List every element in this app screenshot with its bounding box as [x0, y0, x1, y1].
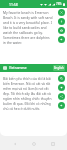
button[interactable]: Copy [58, 75, 65, 82]
staticText: English [54, 66, 64, 70]
button[interactable]: Listen [58, 36, 65, 43]
button[interactable]: Recent apps [48, 139, 57, 148]
button[interactable]: Back [10, 139, 19, 148]
staticText: Vietnamese [9, 66, 27, 70]
staticText: Bãi biển yêu thích của tôi là bãi biển E… [3, 76, 53, 111]
staticText: 78% [56, 2, 62, 6]
button[interactable]: English [53, 65, 65, 71]
staticText: 11:58 [9, 2, 18, 7]
button[interactable]: Vietnamese [0, 64, 67, 72]
button[interactable]: Close [58, 9, 65, 16]
button[interactable]: Camera [58, 27, 65, 34]
staticText: My favorite beach is Emerson Beach. It i… [3, 10, 53, 45]
button[interactable]: Share [58, 93, 65, 100]
button[interactable]: Favorite [58, 84, 65, 91]
button[interactable]: Microphone [58, 18, 65, 25]
button[interactable]: Home [29, 139, 38, 148]
button[interactable]: Listen [58, 102, 65, 109]
